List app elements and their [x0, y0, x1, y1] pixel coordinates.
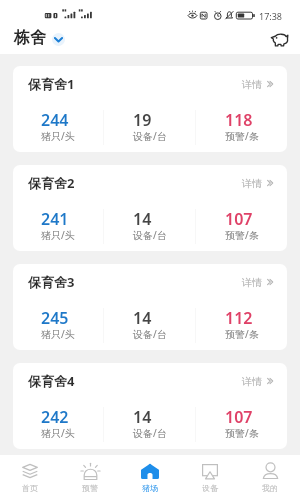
- button[interactable]: 首页: [0, 455, 60, 500]
- staticText: 保育舍4: [28, 372, 75, 390]
- button[interactable]: 详情: [232, 264, 287, 300]
- staticText: 设备/台: [133, 129, 167, 143]
- button[interactable]: 保育舍2: [13, 165, 287, 251]
- staticText: 107: [225, 208, 253, 230]
- button[interactable]: 详情: [232, 165, 287, 201]
- button[interactable]: 猪只: [266, 26, 292, 52]
- staticText: 预警/条: [225, 129, 259, 143]
- button[interactable]: 保育舍4: [13, 363, 287, 449]
- staticText: 预警/条: [225, 228, 259, 242]
- staticText: 设备/台: [133, 327, 167, 341]
- staticText: 预警/条: [225, 426, 259, 440]
- staticText: 112: [225, 307, 253, 329]
- staticText: 猪场: [142, 483, 158, 493]
- staticText: 设备/台: [133, 426, 167, 440]
- staticText: 猪只/头: [41, 129, 75, 143]
- staticText: 保育舍3: [28, 273, 75, 291]
- button[interactable]: 猪场: [120, 455, 180, 500]
- staticText: 14: [133, 307, 152, 329]
- staticText: 预警/条: [225, 327, 259, 341]
- staticText: 设备/台: [133, 228, 167, 242]
- staticText: 118: [225, 109, 253, 131]
- button[interactable]: 我的: [240, 455, 300, 500]
- staticText: 我的: [262, 483, 278, 493]
- staticText: 猪只/头: [41, 327, 75, 341]
- staticText: 详情: [242, 276, 262, 289]
- staticText: 猪只/头: [41, 426, 75, 440]
- staticText: 244: [41, 109, 69, 131]
- button[interactable]: 保育舍3: [13, 264, 287, 350]
- button[interactable]: 栋舍: [0, 24, 73, 54]
- button[interactable]: 设备: [180, 455, 240, 500]
- staticText: 详情: [242, 78, 262, 91]
- staticText: 242: [41, 406, 69, 428]
- staticText: 首页: [22, 483, 38, 493]
- staticText: 保育舍1: [28, 75, 75, 93]
- staticText: 245: [41, 307, 69, 329]
- staticText: 14: [133, 208, 152, 230]
- staticText: 241: [41, 208, 69, 230]
- button[interactable]: 预警: [60, 455, 120, 500]
- staticText: 预警: [82, 483, 98, 493]
- button[interactable]: 详情: [232, 363, 287, 399]
- staticText: 猪只/头: [41, 228, 75, 242]
- staticText: 107: [225, 406, 253, 428]
- staticText: 19: [133, 109, 152, 131]
- staticText: 栋舍: [14, 28, 46, 48]
- staticText: 14: [133, 406, 152, 428]
- button[interactable]: 详情: [232, 66, 287, 102]
- staticText: 详情: [242, 177, 262, 190]
- staticText: 17:38: [259, 10, 283, 22]
- staticText: 设备: [202, 483, 218, 493]
- button[interactable]: 保育舍1: [13, 66, 287, 152]
- staticText: 保育舍2: [28, 174, 75, 192]
- staticText: 详情: [242, 375, 262, 388]
